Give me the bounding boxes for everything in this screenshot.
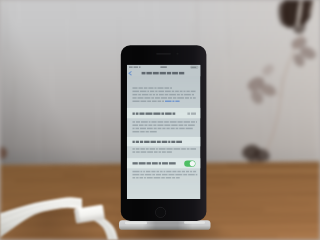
other: iPhone showing battery health settings bbox=[0, 0, 320, 240]
button[interactable] bbox=[0, 0, 320, 240]
